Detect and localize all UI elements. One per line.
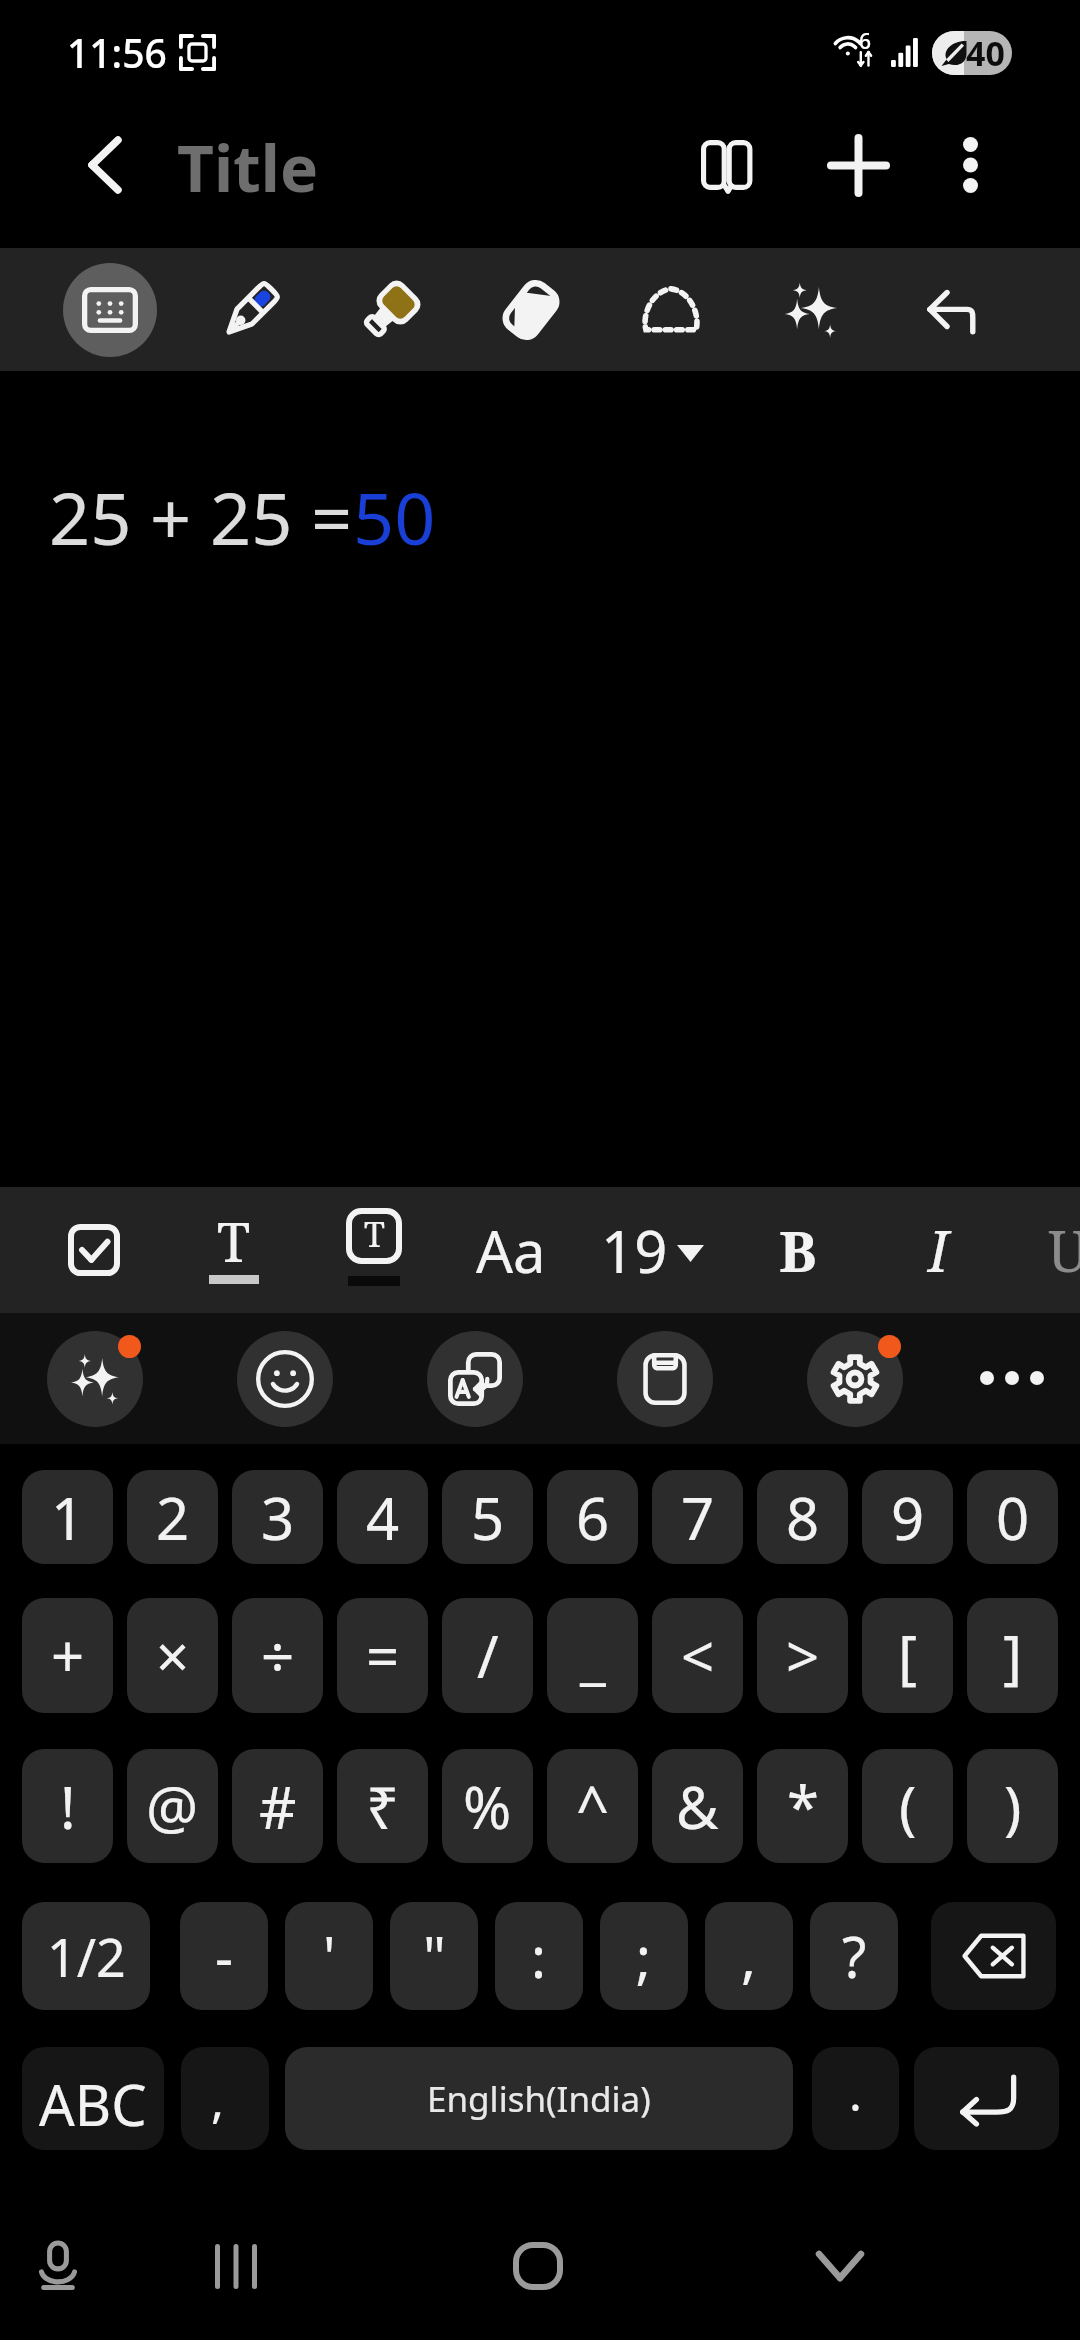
button[interactable]: Backspace bbox=[931, 1902, 1056, 2010]
button[interactable]: Undo bbox=[904, 263, 998, 357]
staticText: 3 bbox=[261, 1478, 295, 1557]
staticText: ; bbox=[636, 1918, 652, 1994]
button[interactable]: AI assist bbox=[764, 263, 858, 357]
button[interactable]: Home bbox=[488, 2216, 588, 2316]
button[interactable]: ÷ bbox=[232, 1598, 323, 1713]
button[interactable]: Recents bbox=[186, 2216, 286, 2316]
button[interactable]: > bbox=[757, 1598, 848, 1713]
staticText: = bbox=[366, 1616, 400, 1695]
staticText: 19 bbox=[601, 1211, 668, 1290]
button[interactable]: 4 bbox=[337, 1470, 428, 1564]
button[interactable]: Clipboard bbox=[617, 1331, 713, 1427]
button[interactable]: < bbox=[652, 1598, 743, 1713]
button[interactable]: Underline bbox=[1018, 1187, 1080, 1313]
button[interactable]: ] bbox=[967, 1598, 1058, 1713]
button[interactable]: Bold bbox=[748, 1187, 848, 1313]
button[interactable]: _ bbox=[547, 1598, 638, 1713]
staticText: ABC bbox=[39, 2066, 147, 2142]
button[interactable]: More bbox=[965, 1331, 1059, 1425]
button[interactable]: Eraser bbox=[484, 263, 578, 357]
staticText: Title bbox=[177, 124, 319, 211]
staticText: < bbox=[681, 1616, 715, 1695]
button[interactable]: & bbox=[652, 1749, 743, 1863]
button[interactable]: ! bbox=[22, 1749, 113, 1863]
staticText: - bbox=[215, 1918, 234, 1994]
button[interactable]: 2 bbox=[127, 1470, 218, 1564]
staticText: 5 bbox=[471, 1478, 505, 1557]
button[interactable]: 1 bbox=[22, 1470, 113, 1564]
button[interactable]: Pen bbox=[204, 263, 298, 357]
button[interactable]: ' bbox=[285, 1902, 373, 2010]
staticText: ) bbox=[1004, 1767, 1022, 1846]
button[interactable]: + bbox=[22, 1598, 113, 1713]
button[interactable]: Enter bbox=[914, 2047, 1059, 2150]
button[interactable]: Selection bbox=[624, 263, 718, 357]
staticText: 1 bbox=[51, 1478, 85, 1557]
button[interactable]: 6 bbox=[547, 1470, 638, 1564]
staticText: 1/2 bbox=[47, 1921, 126, 1992]
button[interactable]: @ bbox=[127, 1749, 218, 1863]
staticText: English(India) bbox=[427, 2075, 651, 2123]
button[interactable]: ABC bbox=[22, 2047, 164, 2150]
button[interactable]: Settings bbox=[807, 1331, 903, 1427]
button[interactable]: Voice input bbox=[8, 2216, 108, 2316]
button[interactable]: Highlight bbox=[322, 1187, 426, 1313]
button[interactable]: AI suggestions bbox=[47, 1331, 143, 1427]
button[interactable]: [ bbox=[862, 1598, 953, 1713]
button[interactable]: × bbox=[127, 1598, 218, 1713]
staticText: T bbox=[364, 1211, 385, 1257]
button[interactable]: " bbox=[390, 1902, 478, 2010]
button[interactable]: Reading mode bbox=[678, 115, 778, 215]
button[interactable]: Highlighter bbox=[344, 263, 438, 357]
button[interactable]: 8 bbox=[757, 1470, 848, 1564]
button[interactable]: Back bbox=[67, 127, 143, 203]
staticText: > bbox=[786, 1616, 820, 1695]
button[interactable]: = bbox=[337, 1598, 428, 1713]
button[interactable]: Checklist bbox=[42, 1187, 146, 1313]
button[interactable]: 3 bbox=[232, 1470, 323, 1564]
button[interactable]: Keyboard bbox=[63, 263, 157, 357]
staticText: 50 bbox=[353, 468, 436, 566]
button[interactable]: . bbox=[812, 2047, 899, 2150]
staticText: 25 + 25 = bbox=[49, 468, 353, 566]
button[interactable]: Font style bbox=[450, 1187, 572, 1313]
staticText: 40 bbox=[966, 31, 1005, 74]
button[interactable]: ( bbox=[862, 1749, 953, 1863]
button[interactable]: ; bbox=[600, 1902, 688, 2010]
button[interactable]: ) bbox=[967, 1749, 1058, 1863]
staticText: " bbox=[423, 1918, 446, 1994]
button[interactable]: ^ bbox=[547, 1749, 638, 1863]
button[interactable]: ? bbox=[810, 1902, 898, 2010]
staticText: / bbox=[477, 1616, 499, 1695]
button[interactable]: 5 bbox=[442, 1470, 533, 1564]
button[interactable]: ₹ bbox=[337, 1749, 428, 1863]
button[interactable]: 0 bbox=[967, 1470, 1058, 1564]
button[interactable]: , bbox=[181, 2047, 269, 2150]
button[interactable]: Add bbox=[808, 115, 908, 215]
button[interactable]: # bbox=[232, 1749, 323, 1863]
staticText: 6 bbox=[576, 1478, 610, 1557]
button[interactable]: Hide keyboard bbox=[790, 2216, 890, 2316]
button[interactable]: Italic bbox=[888, 1187, 988, 1313]
button[interactable]: 7 bbox=[652, 1470, 743, 1564]
button[interactable]: Translate bbox=[427, 1331, 523, 1427]
button[interactable]: Text colour bbox=[182, 1187, 286, 1313]
button[interactable]: 9 bbox=[862, 1470, 953, 1564]
button[interactable]: More options bbox=[920, 115, 1020, 215]
button[interactable]: / bbox=[442, 1598, 533, 1713]
button[interactable]: 1/2 bbox=[22, 1902, 150, 2010]
button[interactable]: * bbox=[757, 1749, 848, 1863]
button[interactable]: Emoji bbox=[237, 1331, 333, 1427]
button[interactable]: , bbox=[705, 1902, 793, 2010]
button[interactable]: English(India) bbox=[285, 2047, 793, 2150]
staticText: 7 bbox=[681, 1478, 715, 1557]
staticText: × bbox=[156, 1616, 190, 1695]
staticText: 11:56 bbox=[67, 26, 167, 79]
staticText: : bbox=[531, 1918, 547, 1994]
staticText: ] bbox=[1003, 1616, 1023, 1695]
button[interactable]: : bbox=[495, 1902, 583, 2010]
button[interactable]: % bbox=[442, 1749, 533, 1863]
button[interactable]: - bbox=[180, 1902, 268, 2010]
button[interactable]: Font size bbox=[592, 1187, 712, 1313]
staticText: 0 bbox=[996, 1478, 1030, 1557]
